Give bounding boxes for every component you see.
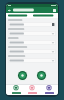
- button[interactable]: [8, 58, 56, 63]
- button[interactable]: Home: [9, 84, 23, 95]
- button[interactable]: Submit: [36, 70, 47, 81]
- button[interactable]: [33, 13, 57, 18]
- button[interactable]: [7, 13, 31, 18]
- button[interactable]: Profile: [42, 84, 56, 95]
- button[interactable]: [8, 49, 56, 54]
- button[interactable]: Reports: [25, 84, 39, 95]
- button[interactable]: Save: [17, 70, 28, 81]
- button[interactable]: [8, 40, 56, 45]
- button[interactable]: Back: [7, 8, 12, 13]
- button[interactable]: [8, 22, 56, 27]
- button[interactable]: [8, 31, 56, 36]
- button[interactable]: More options: [52, 8, 57, 13]
